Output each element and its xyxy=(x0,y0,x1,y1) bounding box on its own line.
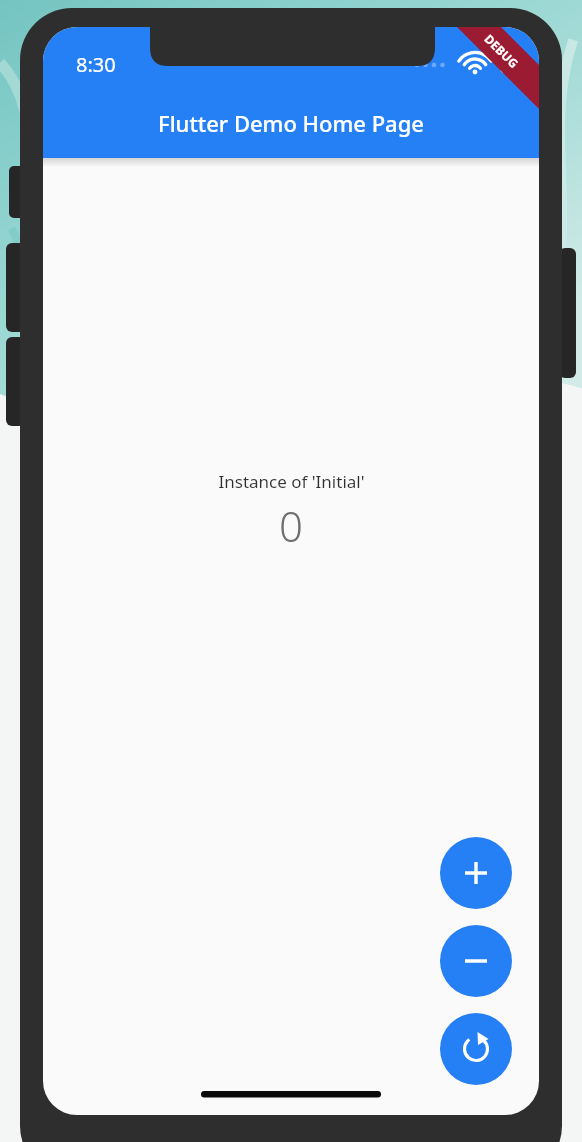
staticText: 0 xyxy=(279,497,303,554)
button[interactable]: Reset xyxy=(440,1013,512,1085)
staticText: DEBUG xyxy=(481,30,522,71)
staticText: 8:30 xyxy=(76,51,116,78)
staticText: Flutter Demo Home Page xyxy=(43,108,539,138)
button[interactable]: Decrement xyxy=(440,925,512,997)
staticText: Instance of 'Initial' xyxy=(218,470,365,493)
button[interactable]: Increment xyxy=(440,837,512,909)
